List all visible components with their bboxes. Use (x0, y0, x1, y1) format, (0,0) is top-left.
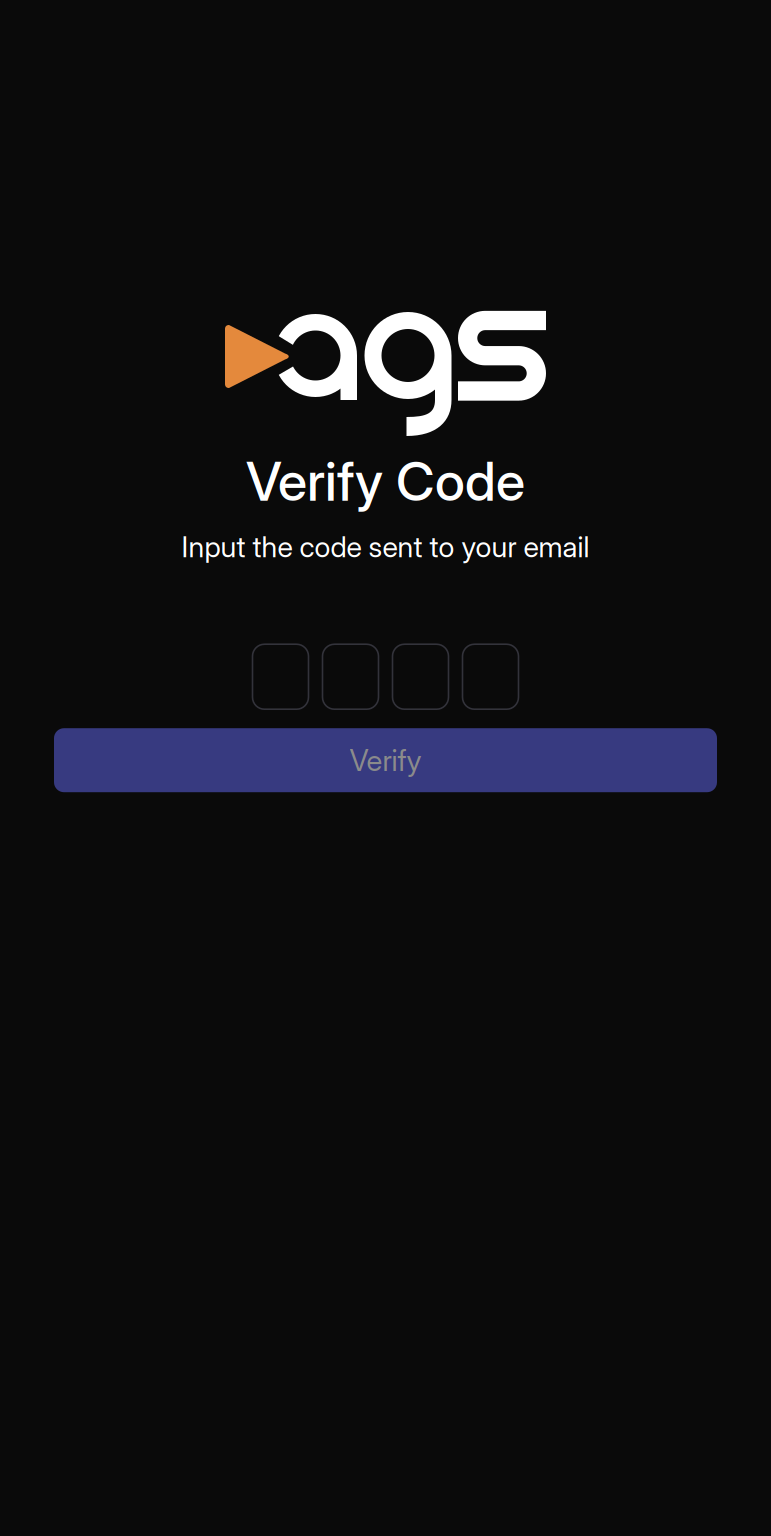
button[interactable]: Verify (54, 728, 717, 792)
staticText: Input the code sent to your email (181, 529, 589, 564)
button[interactable]: Code digit 4 (462, 644, 518, 709)
staticText: Verify (349, 742, 421, 778)
button[interactable]: Code digit 2 (322, 644, 378, 709)
button[interactable]: Code digit 1 (252, 644, 308, 709)
staticText: Verify Code (246, 449, 525, 513)
button[interactable]: Code digit 3 (392, 644, 448, 709)
